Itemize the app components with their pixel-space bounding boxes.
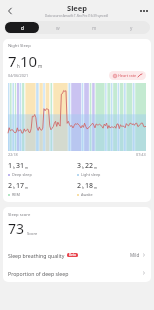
- staticText: Score: [27, 231, 38, 236]
- staticText: m: [38, 63, 43, 69]
- staticText: 18: [85, 181, 94, 191]
- staticText: h: [13, 185, 16, 190]
- staticText: 22: [85, 161, 94, 171]
- staticText: 04/06/2021: [8, 73, 29, 78]
- staticText: Deep sleep: [12, 172, 32, 177]
- staticText: 07:43: [136, 152, 146, 157]
- staticText: Heart rate: [118, 73, 137, 78]
- staticText: 10: [20, 51, 38, 71]
- staticText: 22:18: [8, 152, 18, 157]
- staticText: Data source:Amazfit T-Rex Pro (16:39 syn…: [45, 14, 109, 18]
- button[interactable]: More options: [136, 3, 151, 18]
- button[interactable]: d: [5, 22, 39, 33]
- button[interactable]: Back: [2, 3, 17, 18]
- staticText: m: [25, 185, 29, 190]
- staticText: h: [17, 63, 20, 69]
- staticText: Proportion of deep sleep: [8, 270, 69, 277]
- staticText: h: [82, 165, 85, 170]
- staticText: 2: [77, 181, 82, 191]
- button[interactable]: y: [114, 22, 149, 33]
- staticText: 1: [8, 161, 13, 171]
- staticText: Light sleep: [81, 172, 101, 177]
- staticText: m: [94, 165, 98, 170]
- staticText: REM: [12, 192, 20, 197]
- button[interactable]: m: [77, 22, 112, 33]
- staticText: m: [92, 25, 97, 31]
- button[interactable]: Proportion of deep sleep: [8, 264, 146, 282]
- staticText: 2: [8, 181, 13, 191]
- staticText: 3: [77, 161, 82, 171]
- staticText: 7: [8, 51, 17, 71]
- staticText: Sleep breathing quality: [8, 252, 65, 259]
- staticText: h: [82, 185, 85, 190]
- staticText: Mild: [130, 252, 140, 258]
- staticText: 31: [16, 161, 25, 171]
- staticText: Sleep score: [8, 212, 31, 218]
- button[interactable]: Heart rate: [109, 71, 146, 80]
- staticText: m: [25, 165, 29, 170]
- button[interactable]: w: [41, 22, 75, 33]
- staticText: 17: [16, 181, 25, 191]
- staticText: m: [94, 185, 98, 190]
- staticText: y: [130, 25, 133, 31]
- button[interactable]: Sleep breathing quality: [8, 246, 146, 264]
- staticText: 73: [8, 219, 25, 238]
- staticText: Beta: [69, 253, 76, 257]
- staticText: w: [56, 25, 60, 31]
- staticText: Sleep: [67, 3, 88, 13]
- staticText: h: [13, 165, 16, 170]
- staticText: Night Sleep: [8, 43, 31, 49]
- staticText: Awake: [81, 192, 93, 197]
- staticText: d: [21, 25, 24, 31]
